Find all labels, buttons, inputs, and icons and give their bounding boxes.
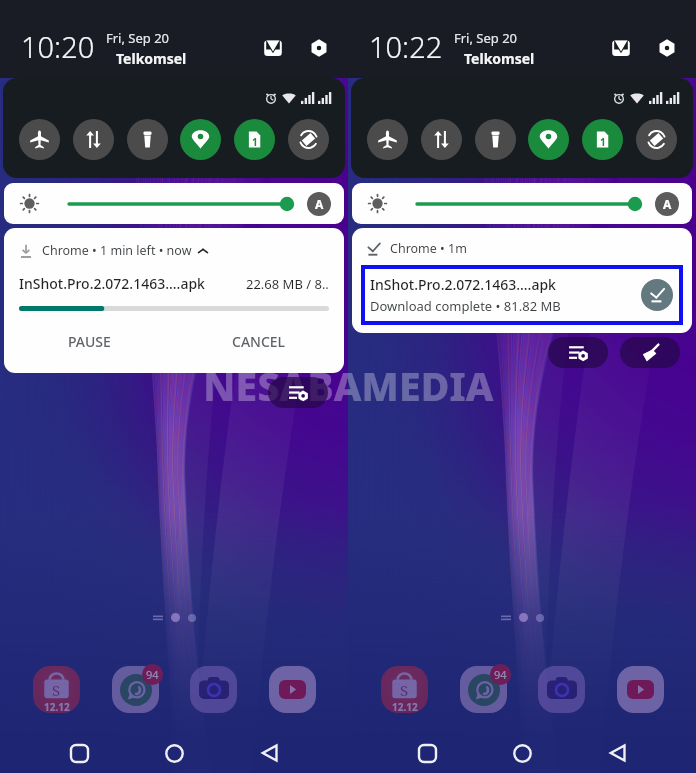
staticText: 1 [252,135,258,149]
button[interactable]: Quick setting [127,119,168,160]
button[interactable]: Recents [410,736,444,770]
staticText: PAUSE [68,332,111,351]
button[interactable]: YouTube [269,666,316,713]
button[interactable]: Quick setting [475,119,516,160]
button[interactable]: Quick setting [288,119,329,160]
staticText: S [400,680,409,700]
staticText: 10:20 [21,27,95,66]
staticText: A [663,196,672,212]
button[interactable]: Quick setting [367,119,408,160]
button[interactable]: Back [601,736,635,770]
staticText: Fri, Sep 20 [106,29,170,47]
button[interactable]: Camera [538,666,585,713]
button[interactable]: Quick setting [582,119,623,160]
button[interactable]: Quick setting [234,119,275,160]
button[interactable]: CANCEL [174,322,344,360]
button[interactable]: Notification settings [268,377,328,408]
button[interactable]: Notifications inbox [606,33,636,63]
button[interactable]: Quick setting [421,119,462,160]
button[interactable]: Recents [62,736,96,770]
button[interactable]: Auto brightness [307,192,331,216]
staticText: 1 [600,135,606,149]
button[interactable]: Quick setting [636,119,677,160]
button[interactable]: Quick setting [180,119,221,160]
button[interactable]: Quick setting [528,119,569,160]
button[interactable]: PAUSE [4,322,174,360]
button[interactable]: Home [157,736,191,770]
button[interactable]: Notifications inbox [258,33,288,63]
button[interactable]: WhatsApp [460,666,507,713]
button[interactable]: Settings [652,33,682,63]
staticText: S [52,680,61,700]
button[interactable]: Shopee [33,666,80,713]
staticText: 22.68 MB / 8.. [246,275,329,293]
button[interactable]: Settings [304,33,334,63]
staticText: NESABAMEDIA [203,359,494,412]
staticText: Telkomsel [116,49,187,68]
staticText: CANCEL [232,332,286,351]
staticText: 94 [146,667,159,682]
staticText: InShot.Pro.2.072.1463....apk [370,275,556,294]
button[interactable]: Auto brightness [655,192,679,216]
button[interactable]: InShot.Pro.2.072.1463....apk [361,265,683,325]
button[interactable]: YouTube [617,666,664,713]
staticText: Download complete • 81.82 MB [370,297,561,315]
button[interactable]: Clear all notifications [620,337,680,368]
staticText: 94 [494,667,507,682]
staticText: 12.12 [392,700,418,713]
button[interactable]: Home [505,736,539,770]
button[interactable]: Camera [190,666,237,713]
button[interactable]: Quick setting [19,119,60,160]
button[interactable]: Quick setting [73,119,114,160]
button[interactable]: WhatsApp [112,666,159,713]
button[interactable]: Back [253,736,287,770]
staticText: Telkomsel [464,49,535,68]
button[interactable]: Notification settings [548,337,608,368]
staticText: InShot.Pro.2.072.1463....apk [19,274,205,293]
staticText: Fri, Sep 20 [454,29,518,47]
staticText: Chrome • 1 min left • now [42,242,192,259]
staticText: 10:22 [369,27,443,66]
staticText: 12.12 [44,700,70,713]
button[interactable]: Shopee [381,666,428,713]
staticText: Chrome • 1m [390,240,467,257]
staticText: A [315,196,324,212]
